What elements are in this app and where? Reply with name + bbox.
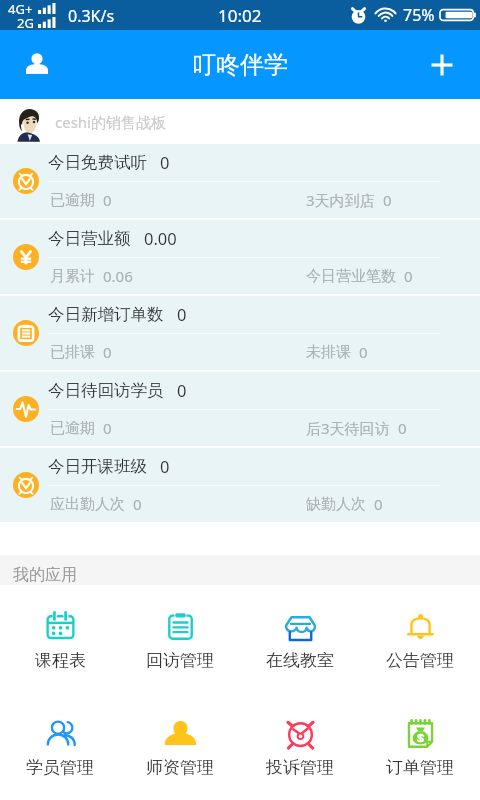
button[interactable]: Profile xyxy=(14,42,60,88)
staticText: 0.3K/s xyxy=(68,5,115,27)
button[interactable]: 公告管理 xyxy=(360,609,480,688)
button[interactable]: 今日免费试听 xyxy=(0,144,480,218)
staticText: 4G+ xyxy=(8,0,33,18)
staticText: 0 xyxy=(160,151,170,173)
staticText: 今日营业笔数 xyxy=(306,267,396,286)
staticText: 学员管理 xyxy=(26,757,94,778)
staticText: 0 xyxy=(177,379,187,401)
staticText: 月累计 xyxy=(50,267,95,286)
staticText: 0 xyxy=(103,418,112,438)
staticText: 今日营业额 xyxy=(48,228,131,249)
staticText: ceshi的销售战板 xyxy=(55,112,166,132)
staticText: 今日免费试听 xyxy=(48,152,147,173)
staticText: 已逾期 xyxy=(50,419,95,438)
staticText: 0 xyxy=(103,190,112,210)
staticText: 今日新增订单数 xyxy=(48,304,164,325)
staticText: 0 xyxy=(374,494,383,514)
staticText: 3天内到店 xyxy=(306,190,375,210)
staticText: 已逾期 xyxy=(50,191,95,210)
button[interactable]: 今日营业额 xyxy=(0,220,480,294)
button[interactable]: ceshi的销售战板 xyxy=(0,99,480,144)
staticText: 今日开课班级 xyxy=(48,456,147,477)
button[interactable]: Add xyxy=(419,42,465,88)
staticText: 课程表 xyxy=(35,650,86,671)
staticText: 0 xyxy=(103,342,112,362)
staticText: 未排课 xyxy=(306,343,351,362)
button[interactable]: 订单管理 xyxy=(360,716,480,795)
button[interactable]: 今日开课班级 xyxy=(0,448,480,522)
button[interactable]: 投诉管理 xyxy=(240,716,360,795)
staticText: 0 xyxy=(160,455,170,477)
staticText: 已排课 xyxy=(50,343,95,362)
button[interactable]: 课程表 xyxy=(0,609,120,688)
staticText: 0 xyxy=(398,418,407,438)
staticText: 回访管理 xyxy=(146,650,214,671)
staticText: 2G xyxy=(17,14,34,30)
button[interactable]: 师资管理 xyxy=(120,716,240,795)
button[interactable]: 学员管理 xyxy=(0,716,120,795)
staticText: 0 xyxy=(383,190,392,210)
button[interactable]: 回访管理 xyxy=(120,609,240,688)
staticText: 0 xyxy=(404,266,413,286)
staticText: 公告管理 xyxy=(386,650,454,671)
staticText: 今日待回访学员 xyxy=(48,380,164,401)
staticText: 10:02 xyxy=(218,4,262,27)
staticText: 0.00 xyxy=(144,227,177,249)
button[interactable]: 在线教室 xyxy=(240,609,360,688)
staticText: 师资管理 xyxy=(146,757,214,778)
button[interactable]: 今日新增订单数 xyxy=(0,296,480,370)
button[interactable]: 今日待回访学员 xyxy=(0,372,480,446)
staticText: 0 xyxy=(133,494,142,514)
staticText: 75% xyxy=(403,4,435,26)
staticText: 后3天待回访 xyxy=(306,418,390,438)
staticText: 0.06 xyxy=(103,266,133,286)
staticText: 叮咚伴学 xyxy=(192,50,288,80)
staticText: 0 xyxy=(359,342,368,362)
staticText: 订单管理 xyxy=(386,757,454,778)
staticText: 我的应用 xyxy=(13,565,77,585)
staticText: 0 xyxy=(177,303,187,325)
staticText: 在线教室 xyxy=(266,650,334,671)
staticText: 应出勤人次 xyxy=(50,495,125,514)
staticText: 投诉管理 xyxy=(266,757,334,778)
staticText: 缺勤人次 xyxy=(306,495,366,514)
